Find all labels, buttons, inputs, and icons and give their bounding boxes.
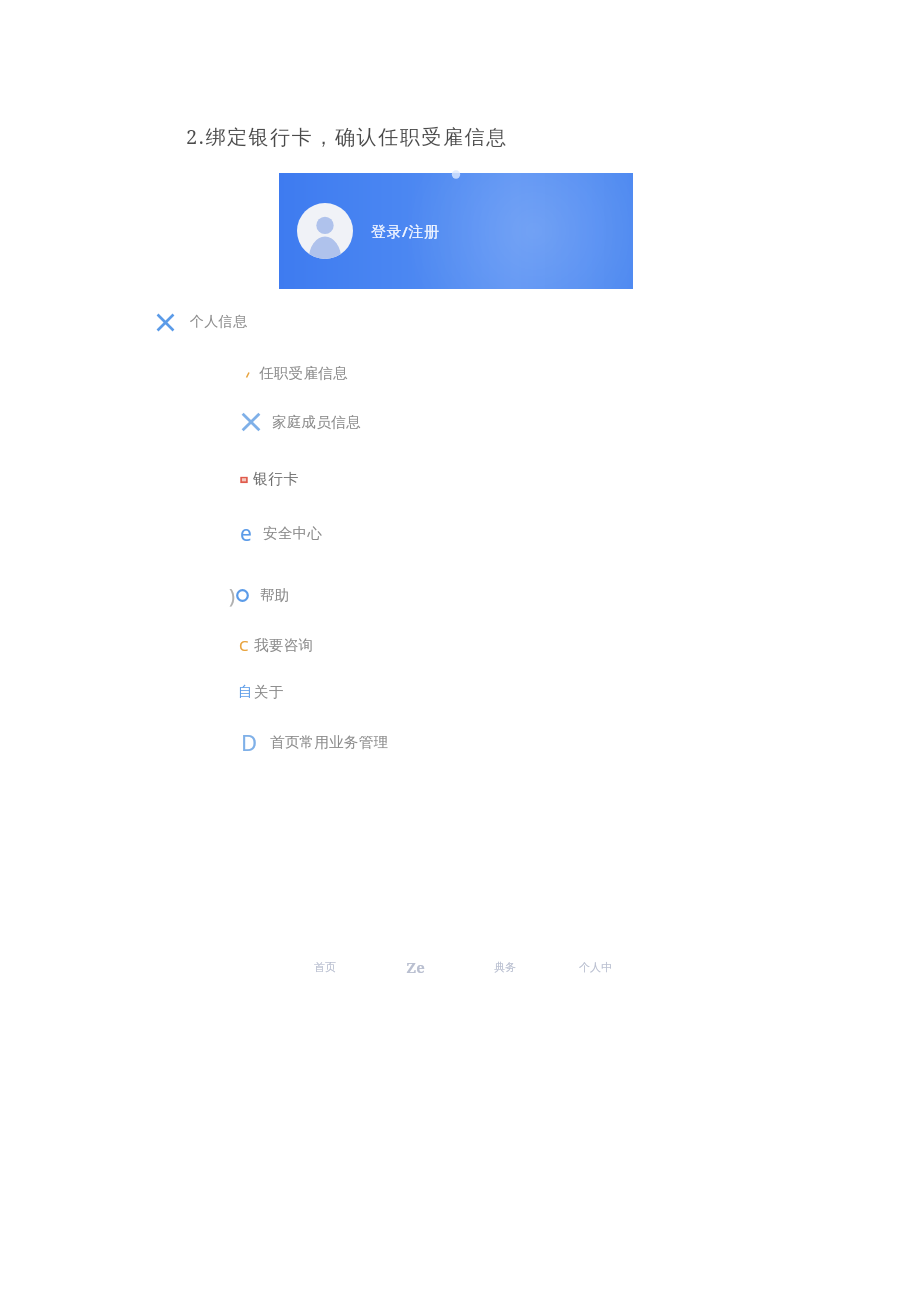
staticText: 关于 [254, 683, 284, 701]
staticText: 2.绑定银行卡，确认任职受雇信息 [186, 123, 508, 150]
button[interactable]: 登录/注册 [279, 173, 633, 289]
button[interactable]: Item icon [240, 518, 323, 548]
staticText: 帮助 [260, 586, 290, 604]
other: Item icon [241, 727, 258, 757]
staticText: 安全中心 [263, 524, 323, 542]
staticText: 个人中 [579, 960, 612, 974]
staticText: 任职受雇信息 [259, 364, 348, 382]
staticText: 银行卡 [253, 470, 299, 489]
button[interactable]: Item icon [155, 307, 248, 337]
button[interactable]: Item icon [239, 630, 314, 660]
button[interactable]: 首页 [280, 950, 370, 984]
staticText: 个人信息 [190, 313, 248, 331]
staticText: C [239, 635, 249, 655]
button[interactable]: Item icon [238, 677, 284, 707]
other: Item icon [240, 411, 262, 433]
button[interactable]: 个人中 [550, 950, 640, 984]
button[interactable]: Help [229, 580, 290, 610]
other: Item icon [239, 635, 249, 655]
other: Help [229, 582, 249, 609]
staticText: 首页常用业务管理 [270, 733, 389, 751]
button[interactable]: Item icon [240, 407, 361, 437]
staticText: Ze [406, 957, 425, 977]
staticText: 自 [238, 683, 252, 701]
other: Item icon [155, 312, 176, 333]
other: Item icon [243, 368, 253, 378]
staticText: ) [229, 582, 235, 609]
staticText: 我要咨询 [254, 636, 314, 654]
staticText: 首页 [314, 960, 336, 974]
button[interactable]: 2.绑定银行卡，确认任职受雇信息 [186, 123, 508, 150]
staticText: e [240, 519, 252, 548]
staticText: D [241, 727, 258, 757]
staticText: 家庭成员信息 [272, 413, 361, 431]
button[interactable]: Bank card [238, 464, 299, 494]
button[interactable]: Ze [370, 950, 460, 984]
button[interactable]: Item icon [243, 358, 348, 388]
button[interactable]: Item icon [241, 727, 389, 757]
other: Item icon [240, 519, 252, 548]
staticText: 典务 [494, 960, 516, 974]
button[interactable]: 典务 [460, 950, 550, 984]
other: Bank card [238, 473, 250, 485]
staticText: 登录/注册 [371, 221, 440, 241]
other: Item icon [238, 683, 252, 701]
